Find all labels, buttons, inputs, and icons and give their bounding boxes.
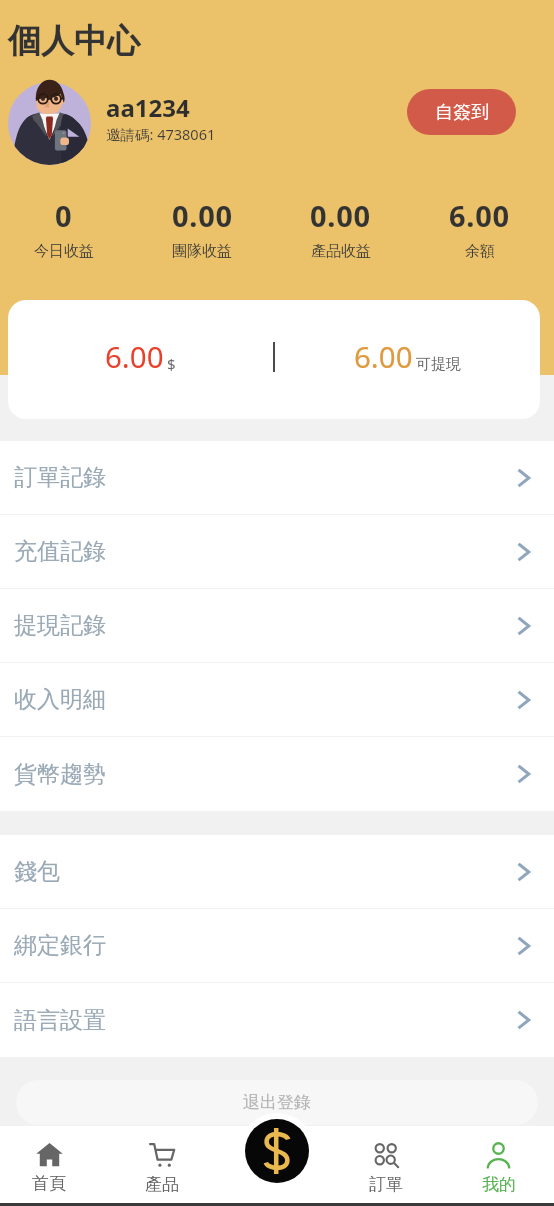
staticText: 0.00 [310,196,371,235]
staticText: 6.00 [449,196,510,235]
staticText: aa1234 [106,91,190,124]
button[interactable]: 訂單 [330,1126,441,1195]
button[interactable]: 自簽到 [407,89,516,135]
staticText: 自簽到 [435,101,489,124]
staticText: 可提現 [416,355,461,374]
staticText: 產品收益 [311,242,371,261]
staticText: 收入明細 [14,685,106,714]
staticText: 6.00 [354,336,413,376]
staticText: 0 [55,196,73,235]
button[interactable]: 綁定銀行 [0,909,554,982]
staticText: 個人中心 [8,20,140,62]
staticText: 0.00 [172,196,233,235]
button[interactable]: 產品 [106,1126,217,1195]
button[interactable]: 語言設置 [0,983,554,1057]
staticText: 團隊收益 [172,242,232,261]
button[interactable]: 訂單記錄 [0,441,554,514]
button[interactable]: 退出登錄 [16,1080,538,1125]
button[interactable]: 提現記錄 [0,589,554,662]
button[interactable]: Wallet [245,1119,309,1183]
staticText: 綁定銀行 [14,931,106,960]
staticText: 產品 [145,1174,179,1195]
staticText: 首頁 [32,1173,66,1194]
button[interactable]: 錢包 [0,835,554,908]
button[interactable]: 充值記錄 [0,515,554,588]
button[interactable]: 收入明細 [0,663,554,736]
staticText: $ [167,354,176,374]
staticText: 錢包 [14,857,60,886]
staticText: 我的 [482,1174,516,1195]
staticText: 充值記錄 [14,537,106,566]
staticText: 邀請碼: 4738061 [106,124,216,144]
button[interactable]: 我的 [443,1126,554,1195]
staticText: 退出登錄 [243,1092,311,1113]
staticText: 訂單 [369,1174,403,1195]
staticText: 今日收益 [34,242,94,261]
staticText: 貨幣趨勢 [14,760,106,789]
staticText: 語言設置 [14,1006,106,1035]
staticText: 訂單記錄 [14,463,106,492]
staticText: 6.00 [105,336,164,376]
button[interactable]: 貨幣趨勢 [0,737,554,811]
staticText: 提現記錄 [14,611,106,640]
button[interactable]: 首頁 [0,1126,104,1194]
staticText: 余額 [465,242,495,261]
